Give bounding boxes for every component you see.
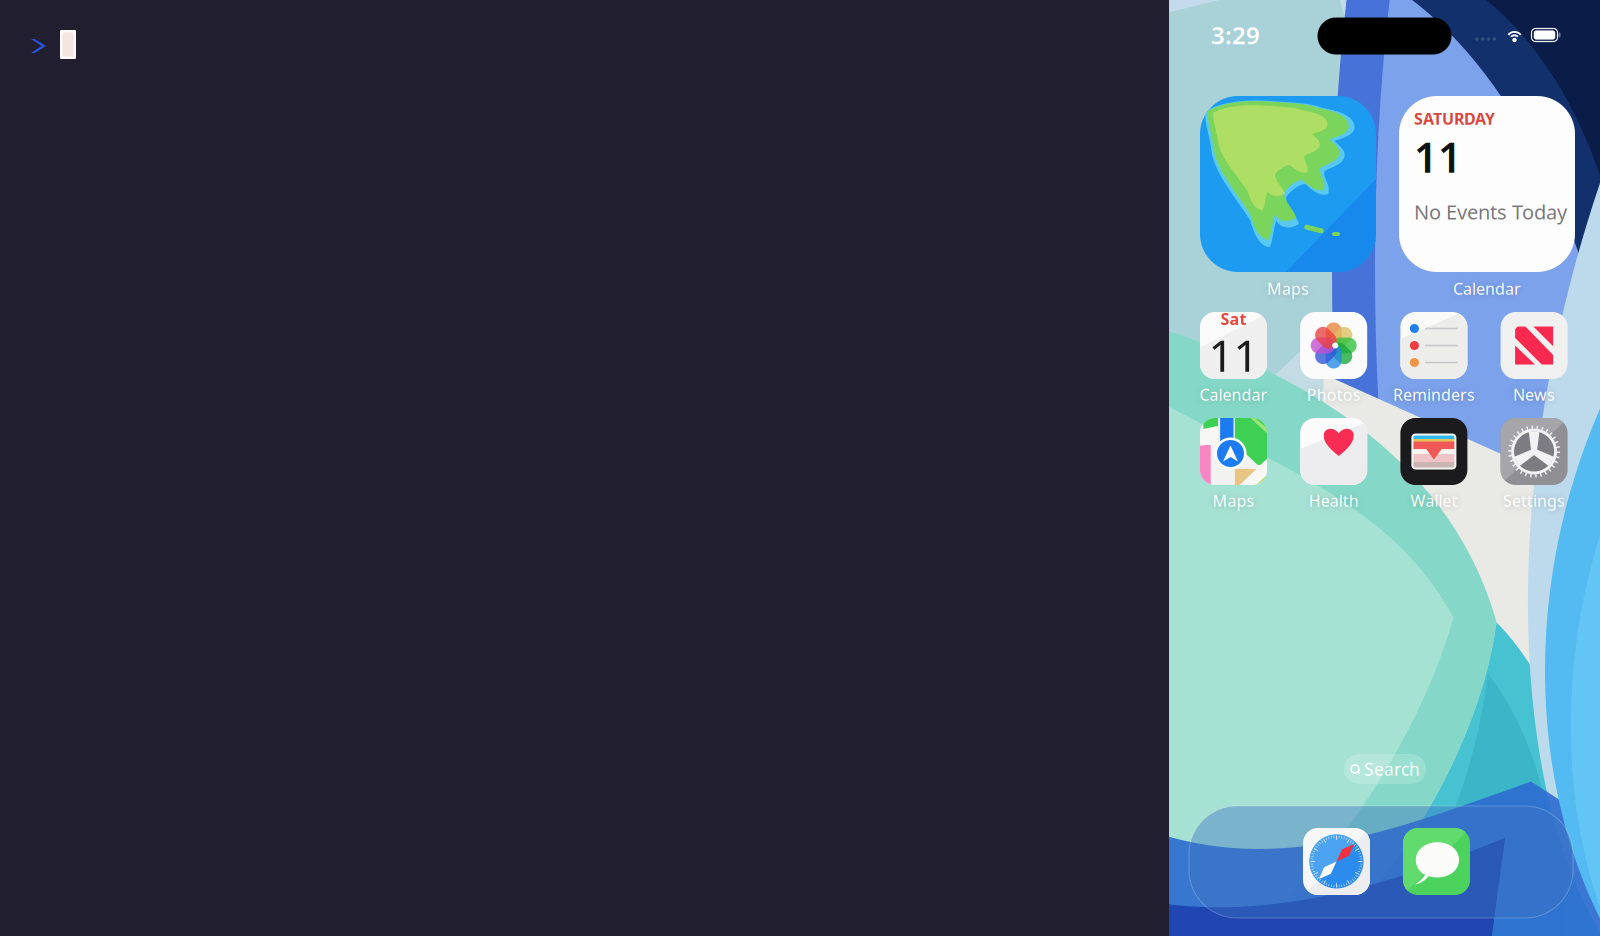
staticText: No Events Today [1414, 198, 1567, 225]
staticText: Health [1309, 490, 1359, 511]
staticText: 3:29 [1211, 19, 1260, 51]
button[interactable]: Messages [1403, 828, 1470, 895]
staticText: Photos [1307, 384, 1361, 405]
button[interactable]: Photos [1300, 312, 1367, 405]
button[interactable]: SATURDAY [1399, 96, 1575, 299]
button[interactable]: Reminders [1400, 312, 1467, 405]
staticText: Maps [1212, 490, 1254, 511]
staticText: 11 [1414, 129, 1462, 184]
button[interactable]: Sat [1200, 312, 1267, 405]
button[interactable]: Maps [1200, 96, 1376, 299]
staticText: Sat [1220, 308, 1246, 329]
button[interactable]: Maps [1200, 418, 1267, 511]
button[interactable]: Safari [1303, 828, 1370, 895]
staticText: Reminders [1393, 384, 1475, 405]
button[interactable]: Settings [1501, 418, 1568, 511]
staticText: Calendar [1453, 278, 1521, 299]
staticText: Maps [1267, 278, 1309, 299]
button[interactable]: News [1501, 312, 1568, 405]
staticText: 11 [1208, 325, 1258, 384]
button[interactable]: Search [1344, 754, 1426, 784]
staticText: Calendar [1199, 384, 1267, 405]
staticText: Settings [1503, 490, 1565, 511]
button[interactable]: Wallet [1400, 418, 1467, 511]
staticText: Search [1364, 757, 1420, 780]
staticText: Wallet [1410, 490, 1457, 511]
button[interactable]: Health [1300, 418, 1367, 511]
staticText: News [1513, 384, 1555, 405]
staticText: SATURDAY [1414, 108, 1495, 129]
